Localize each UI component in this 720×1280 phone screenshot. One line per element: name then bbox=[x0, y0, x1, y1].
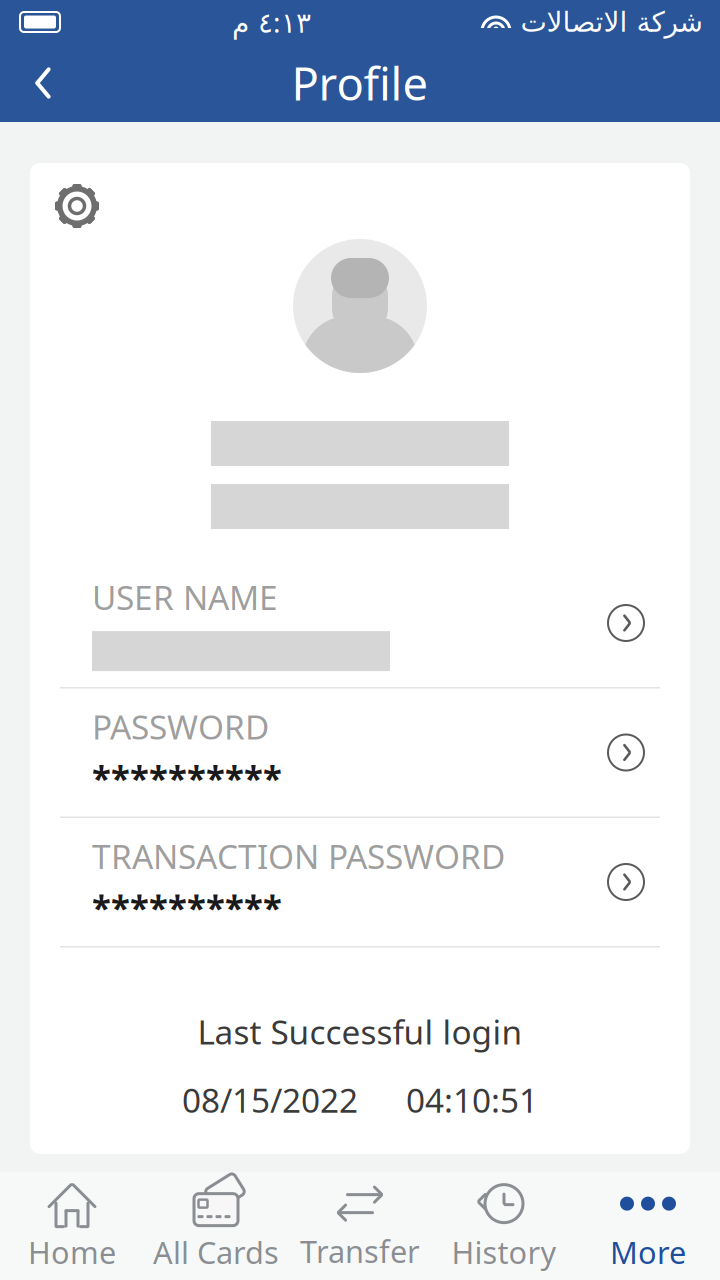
staticText: ********** bbox=[92, 884, 282, 930]
button[interactable]: PASSWORD bbox=[60, 688, 660, 816]
staticText: More bbox=[610, 1232, 686, 1272]
staticText: Home bbox=[28, 1232, 116, 1272]
staticText: 04:10:51 bbox=[406, 1078, 538, 1122]
button[interactable]: History bbox=[432, 1178, 576, 1274]
button[interactable]: Edit bbox=[600, 726, 652, 778]
staticText: TRANSACTION PASSWORD bbox=[92, 834, 505, 878]
button[interactable]: TRANSACTION PASSWORD bbox=[60, 818, 660, 946]
staticText: ********** bbox=[92, 755, 282, 801]
button[interactable]: All Cards bbox=[144, 1178, 288, 1274]
staticText: 08/15/2022 bbox=[182, 1078, 358, 1122]
button[interactable]: Transfer bbox=[288, 1178, 432, 1274]
button[interactable]: Edit bbox=[600, 856, 652, 908]
staticText: شركة الاتصالات bbox=[520, 6, 702, 38]
staticText: Profile bbox=[291, 53, 428, 113]
staticText: Last Successful login bbox=[197, 1009, 522, 1054]
button[interactable]: Edit bbox=[600, 597, 652, 649]
button[interactable]: Back bbox=[14, 54, 72, 112]
button[interactable]: Home bbox=[0, 1178, 144, 1274]
button[interactable]: Settings bbox=[46, 175, 108, 237]
button[interactable]: More bbox=[576, 1178, 720, 1274]
button[interactable]: USER NAME bbox=[60, 559, 660, 687]
staticText: ٤:١٣ م bbox=[231, 3, 310, 41]
staticText: USER NAME bbox=[92, 575, 278, 619]
staticText: Transfer bbox=[300, 1231, 420, 1271]
staticText: History bbox=[451, 1232, 556, 1272]
staticText: PASSWORD bbox=[92, 704, 269, 749]
staticText: All Cards bbox=[153, 1232, 279, 1272]
